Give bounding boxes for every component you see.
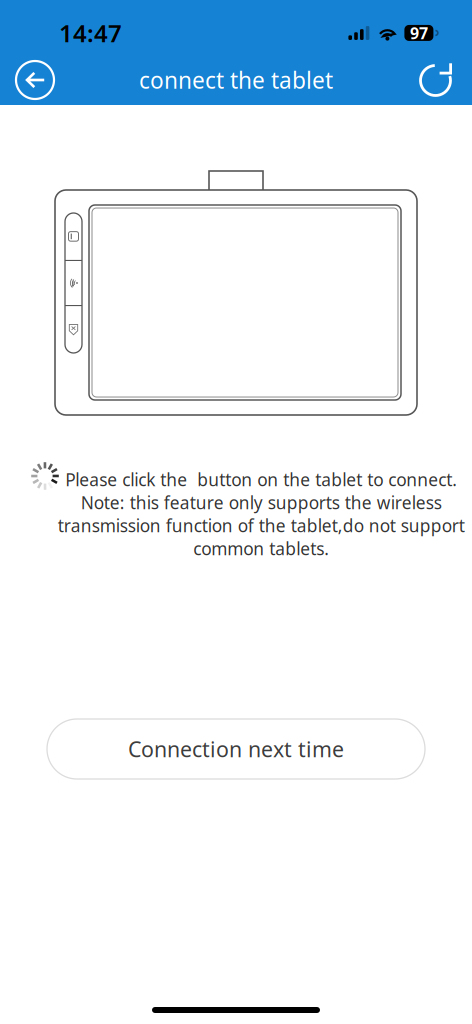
staticText: connect the tablet [139, 65, 333, 95]
button[interactable]: Back [11, 56, 59, 104]
button[interactable]: Connection next time [47, 719, 425, 779]
staticText: 14:47 [59, 17, 122, 49]
staticText: 97 [410, 22, 428, 43]
staticText: Please click the button on the tablet to… [57, 468, 464, 560]
button[interactable]: Refresh [413, 56, 461, 104]
staticText: Connection next time [128, 735, 344, 763]
